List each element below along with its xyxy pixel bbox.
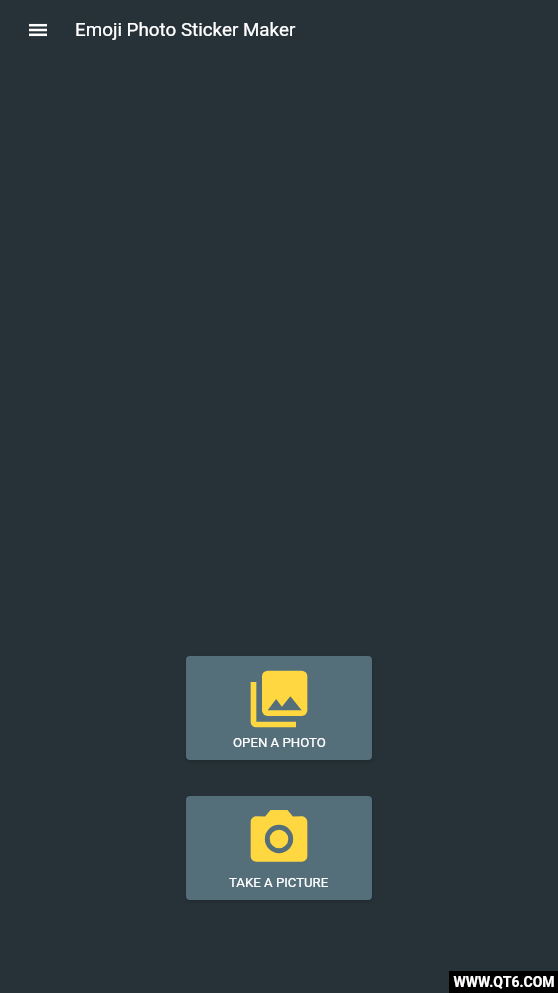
staticText: Emoji Photo Sticker Maker <box>75 19 296 41</box>
staticText: WWW.QT6.COM <box>453 974 555 990</box>
button[interactable]: Open navigation menu <box>14 6 62 54</box>
staticText: TAKE A PICTURE <box>229 875 329 890</box>
staticText: OPEN A PHOTO <box>233 735 326 750</box>
button[interactable]: TAKE A PICTURE <box>186 796 372 900</box>
button[interactable]: OPEN A PHOTO <box>186 656 372 760</box>
